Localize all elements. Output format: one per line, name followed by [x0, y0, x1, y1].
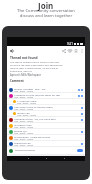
- button[interactable]: I will have a look at the doc there: [7, 105, 85, 110]
- button[interactable]: Send: [77, 149, 83, 152]
- staticText: Like · Reply · Share: [14, 126, 34, 128]
- button[interactable]: Samantha Lee: [7, 141, 85, 146]
- staticText: interaction, each so: [10, 69, 32, 72]
- button[interactable]: Te allocation I think we should: [7, 135, 85, 140]
- button[interactable]: Le Manon mail: [7, 123, 85, 128]
- staticText: Like · Reply · Share: [14, 96, 34, 98]
- staticText: Samantha Lee: [14, 141, 31, 144]
- staticText: Nathaniel Smith Yes, but think with: [14, 117, 56, 120]
- staticText: Like · Reply · Share: [17, 102, 37, 104]
- staticText: Martin Lee: [17, 111, 30, 114]
- staticText: on which the light's document and approp…: [10, 63, 63, 66]
- staticText: Mickey Alvarado fine · 4m: [14, 87, 46, 90]
- staticText: Like · Reply · Share: [14, 132, 34, 134]
- staticText: Thread not found: [10, 56, 38, 60]
- staticText: Le Manon mail: [14, 123, 32, 126]
- button[interactable]: Mickey Alvarado fine · 4m: [7, 87, 85, 92]
- staticText: Like · Reply · Share: [14, 108, 34, 110]
- staticText: Te allocation I think we should: [14, 135, 51, 138]
- staticText: Like · Reply · Share: [14, 138, 34, 140]
- button[interactable]: Like: [67, 48, 73, 54]
- button[interactable]: I suppose so that the font ideas for res…: [7, 93, 85, 98]
- button[interactable]: Bookmark: [73, 48, 79, 54]
- staticText: Like · Reply · Share: [17, 114, 37, 116]
- button[interactable]: Roman Qu: [7, 129, 85, 134]
- staticText: Apricot's Mills Workspace: [10, 73, 41, 77]
- staticText: The Community conversation discuss and l…: [17, 8, 75, 18]
- staticText: T. Osborne Wells: [17, 99, 37, 102]
- staticText: 9:21: [67, 42, 73, 46]
- button[interactable]: Back: [8, 47, 15, 54]
- button[interactable]: Nathaniel Smith Yes, but think with: [7, 117, 85, 122]
- staticText: I will have a look at the doc there: [14, 105, 53, 108]
- staticText: Like · Reply · Share: [14, 120, 34, 122]
- button[interactable]: T. Osborne Wells: [7, 99, 85, 104]
- staticText: The idea of Feature unit is varied in th…: [10, 60, 60, 63]
- button[interactable]: Martin Lee: [7, 111, 85, 116]
- staticText: Comment: [10, 79, 24, 83]
- staticText: Like · Reply · Share: [14, 144, 34, 146]
- staticText: Roman Qu: [14, 129, 27, 132]
- button[interactable]: More options: [79, 48, 85, 54]
- button[interactable]: Share: [61, 48, 67, 54]
- staticText: Like · Reply · Share: [14, 90, 34, 92]
- staticText: I suppose so that the font ideas for res…: [14, 93, 61, 96]
- staticText: Join: [38, 0, 54, 11]
- staticText: used in their is doing things, so any ki…: [10, 66, 59, 69]
